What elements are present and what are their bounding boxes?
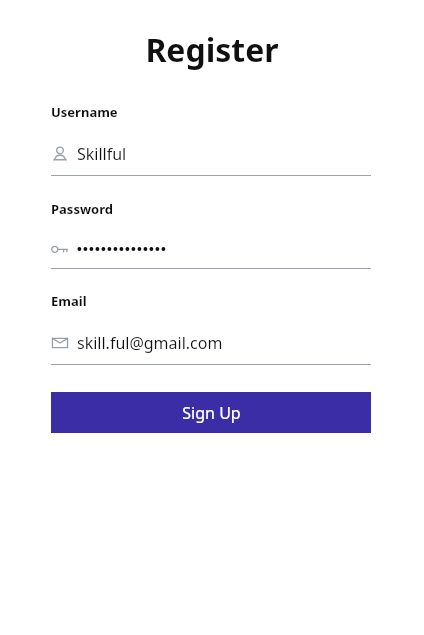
button[interactable]: Username xyxy=(51,103,371,176)
staticText: Password xyxy=(51,200,113,218)
other: Username xyxy=(51,145,69,163)
other: Email xyxy=(51,334,69,352)
button[interactable]: Email xyxy=(51,292,371,365)
staticText: Skillful xyxy=(77,143,127,165)
staticText: Email xyxy=(51,292,87,310)
other: Password xyxy=(51,240,69,258)
button[interactable]: Password xyxy=(51,200,371,269)
staticText: Register xyxy=(145,28,279,72)
button[interactable]: Sign Up xyxy=(51,392,371,433)
staticText: Sign Up xyxy=(182,402,241,424)
staticText: skill.ful@gmail.com xyxy=(77,332,223,354)
staticText: Username xyxy=(51,103,118,121)
